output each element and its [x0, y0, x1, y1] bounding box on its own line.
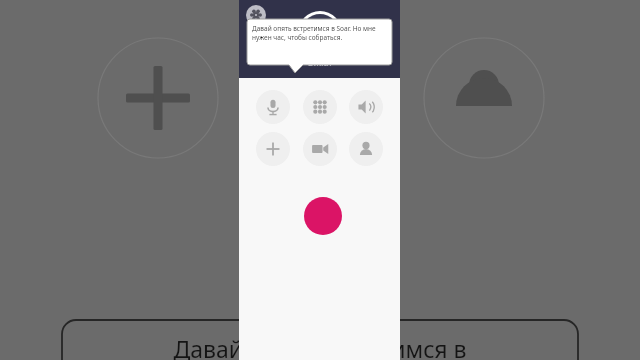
button[interactable]: Speaker — [349, 90, 383, 124]
staticText: Dmitri — [308, 57, 332, 68]
staticText: Давай опять встретимся в — [173, 333, 467, 360]
button[interactable]: Dialpad — [303, 90, 337, 124]
button[interactable]: Add call — [256, 132, 290, 166]
button[interactable]: Video call — [303, 132, 337, 166]
button[interactable]: Settings — [246, 5, 266, 25]
button[interactable]: Mute — [256, 90, 290, 124]
staticText: Давай опять встретимся в Soar. Но мне ну… — [252, 24, 388, 42]
button[interactable]: Contact photo — [298, 11, 342, 55]
button[interactable]: Contacts — [349, 132, 383, 166]
